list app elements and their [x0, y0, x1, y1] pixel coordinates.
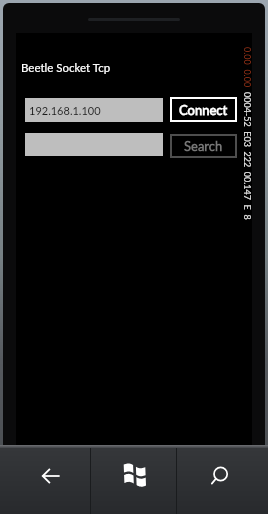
staticText: Beetle Socket Tcp [21, 61, 111, 75]
button[interactable]: Search [170, 134, 237, 158]
button[interactable]: Back [0, 448, 90, 514]
staticText: 192.168.1.100 [29, 104, 101, 117]
button[interactable]: Connect [170, 97, 237, 122]
button[interactable]: 192.168.1.100 [25, 98, 163, 122]
button[interactable]: Search [177, 448, 268, 514]
staticText: 0.00 0.00 [243, 47, 253, 88]
button[interactable]: Start [91, 448, 176, 514]
staticText: Connect [179, 102, 228, 118]
staticText: Search [184, 138, 223, 154]
staticText: 0004-52 E03 222 00.147 E 8 [243, 92, 253, 220]
